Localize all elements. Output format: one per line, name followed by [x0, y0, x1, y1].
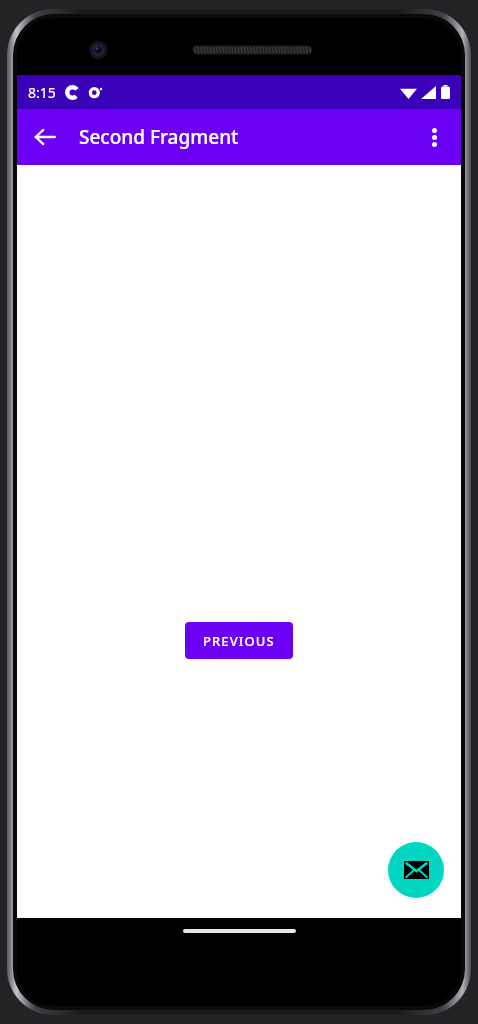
staticText: PREVIOUS: [203, 632, 275, 650]
button[interactable]: More options: [410, 113, 458, 161]
staticText: 8:15: [28, 83, 56, 102]
button[interactable]: Navigate up: [21, 113, 69, 161]
staticText: Second Fragment: [79, 124, 239, 150]
button[interactable]: Send email: [388, 842, 444, 898]
button[interactable]: PREVIOUS: [185, 622, 293, 659]
